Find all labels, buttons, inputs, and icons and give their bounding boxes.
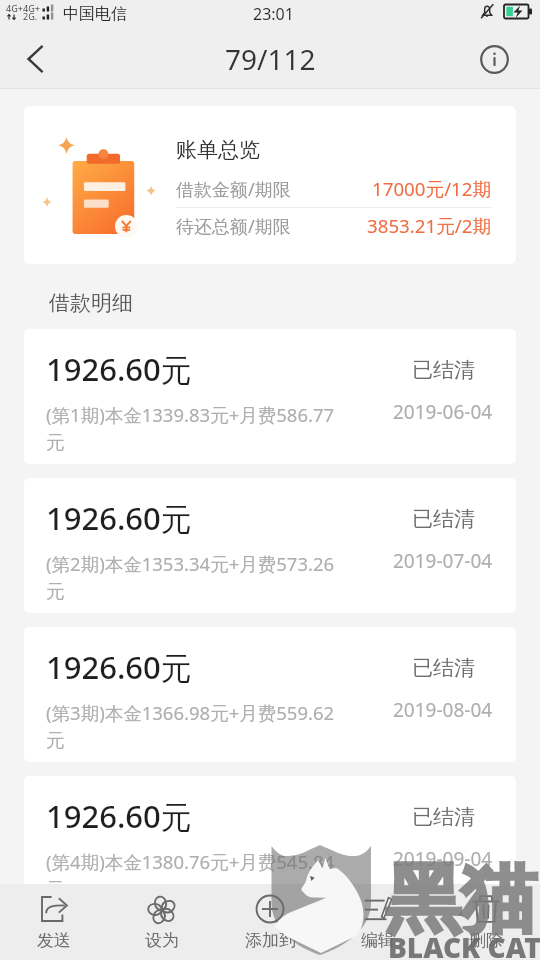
button[interactable]: 删除 xyxy=(432,884,540,960)
staticText: 待还总额/期限 xyxy=(176,214,291,239)
staticText: 已结清 xyxy=(412,804,475,830)
staticText: 已结清 xyxy=(412,655,475,681)
staticText: 1926.60元 xyxy=(46,348,192,390)
button[interactable]: 设为 xyxy=(108,884,216,960)
button[interactable]: Back xyxy=(10,33,62,85)
staticText: 17000元/12期 xyxy=(372,176,492,202)
staticText: 账单总览 xyxy=(176,137,260,163)
staticText: 1926.60元 xyxy=(46,646,192,688)
staticText: 2G. xyxy=(23,10,38,22)
staticText: 已结清 xyxy=(412,506,475,532)
staticText: (第4期)本金1380.76元+月费545.84元 xyxy=(46,849,342,902)
staticText: 发送 xyxy=(37,930,71,951)
staticText: 添加到 xyxy=(245,930,296,951)
staticText: (第2期)本金1353.34元+月费573.26元 xyxy=(46,551,342,604)
staticText: 4G+ xyxy=(23,2,40,14)
staticText: 2019-06-04 xyxy=(393,399,493,425)
staticText: 3853.21元/2期 xyxy=(367,213,492,239)
button[interactable]: 发送 xyxy=(0,884,108,960)
staticText: 2019-09-04 xyxy=(393,846,493,872)
button[interactable]: 1926.60元 xyxy=(24,627,516,762)
staticText: BLACK CAT xyxy=(388,928,540,960)
staticText: 23:01 xyxy=(253,3,294,25)
button[interactable]: 1926.60元 xyxy=(24,329,516,464)
staticText: 79/112 xyxy=(225,40,316,78)
button[interactable]: 1926.60元 xyxy=(24,478,516,613)
staticText: 中国电信 xyxy=(63,4,127,24)
staticText: 借款明细 xyxy=(49,290,133,316)
staticText: 黑猫 xyxy=(385,852,537,948)
staticText: 1926.60元 xyxy=(46,795,192,837)
staticText: 1926.60元 xyxy=(46,497,192,539)
staticText: 已结清 xyxy=(412,357,475,383)
staticText: 设为 xyxy=(145,930,179,951)
staticText: (第1期)本金1339.83元+月费586.77元 xyxy=(46,402,342,455)
button[interactable]: 账单总览 xyxy=(24,106,516,264)
button[interactable]: 编辑 xyxy=(324,884,432,960)
staticText: 2019-08-04 xyxy=(393,697,493,723)
staticText: 删除 xyxy=(469,930,503,951)
button[interactable]: Info xyxy=(477,42,511,76)
staticText: 4G+ xyxy=(6,2,23,14)
staticText: (第3期)本金1366.98元+月费559.62元 xyxy=(46,700,342,753)
staticText: 2019-07-04 xyxy=(393,548,493,574)
staticText: 编辑 xyxy=(361,930,395,951)
button[interactable]: 1926.60元 xyxy=(24,776,516,911)
staticText: 借款金额/期限 xyxy=(176,177,291,202)
button[interactable]: 添加到 xyxy=(216,884,324,960)
